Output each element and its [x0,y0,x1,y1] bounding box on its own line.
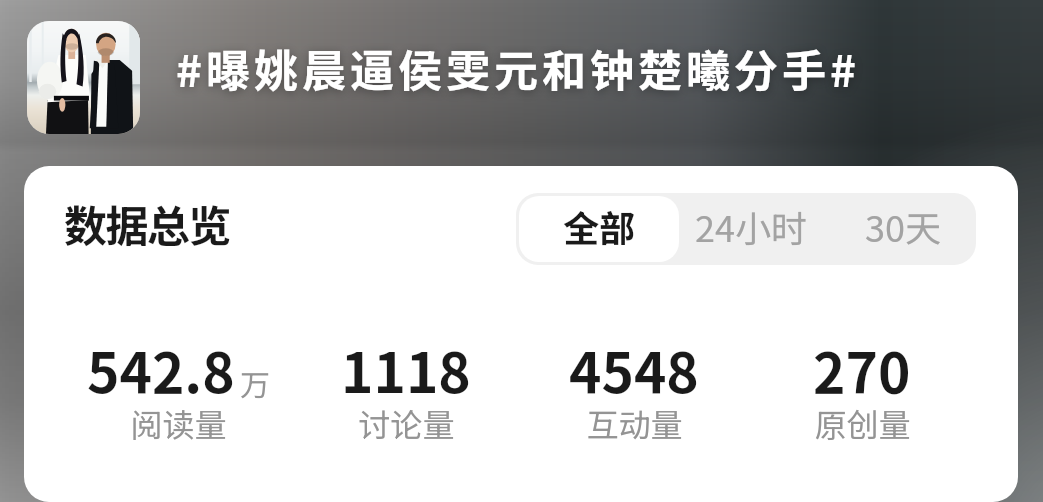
staticText: 原创量 [814,400,911,446]
staticText: 30天 [865,200,941,252]
button[interactable]: 30天 [823,196,973,262]
staticText: 24小时 [695,200,807,252]
staticText: 全部 [563,200,636,252]
staticText: #曝姚晨逼侯雯元和钟楚曦分手# [176,36,860,100]
staticText: 270 [813,329,911,409]
button[interactable]: 270 [748,329,976,455]
staticText: 互动量 [586,400,683,446]
button[interactable]: 24小时 [679,196,823,262]
staticText: 4548 [569,329,699,409]
button[interactable]: Topic avatar [0,0,1043,154]
button[interactable]: 1118 [292,329,520,455]
staticText: 万 [240,361,270,404]
staticText: 数据总览 [64,192,230,254]
staticText: 讨论量 [358,400,455,446]
button[interactable]: 4548 [520,329,748,455]
staticText: 1118 [341,329,471,409]
button[interactable]: Topic avatar [27,21,140,134]
staticText: 阅读量 [130,400,227,446]
button[interactable]: 542.8 [64,329,292,455]
button[interactable]: 全部 [519,196,679,262]
staticText: 542.8 [87,329,235,409]
